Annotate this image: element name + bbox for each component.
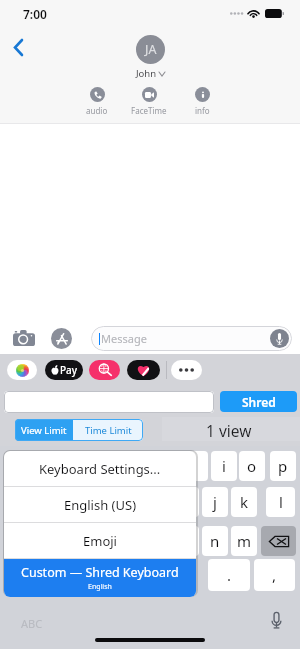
staticText: John (136, 67, 157, 80)
staticText: View Limit (21, 424, 67, 437)
staticText: i (222, 456, 226, 476)
button[interactable]: i (211, 451, 237, 481)
staticText: Time Limit (85, 424, 132, 437)
button[interactable]: Shred (220, 391, 297, 412)
staticText: m (237, 531, 252, 551)
button[interactable]: , (254, 559, 295, 591)
button[interactable]: Custom — Shred Keyboard (4, 559, 196, 597)
button[interactable]: Photos (7, 360, 37, 380)
button[interactable]: p (270, 451, 296, 481)
button[interactable]: n (202, 526, 228, 556)
staticText: n (210, 531, 220, 551)
button[interactable]: Camera (12, 327, 36, 349)
button[interactable]: audio (77, 87, 117, 116)
staticText: FaceTime (131, 105, 167, 116)
button[interactable]: m (231, 526, 257, 556)
button[interactable] (182, 451, 208, 481)
staticText: Keyboard Settings... (39, 460, 161, 478)
button[interactable]: Back (4, 33, 32, 61)
button[interactable]: Image search (89, 360, 120, 380)
button[interactable]: Dictate (270, 329, 289, 348)
button[interactable]: Time Limit (73, 419, 143, 441)
button[interactable]: info (182, 87, 222, 116)
button[interactable]: Emoji (4, 523, 196, 558)
staticText: o (247, 456, 257, 476)
button[interactable] (173, 487, 199, 517)
staticText: Emoji (83, 532, 117, 550)
button[interactable]: Digital Touch (127, 360, 160, 380)
button[interactable]: Dictate (264, 608, 288, 632)
button[interactable]: JA (136, 35, 165, 64)
button[interactable]: App Store (51, 328, 72, 349)
staticText: 7:00 (23, 6, 47, 22)
staticText: . (227, 565, 232, 585)
staticText: k (240, 492, 249, 512)
staticText: , (272, 565, 277, 585)
button[interactable]: English (US) (4, 487, 196, 522)
button[interactable]: More (171, 360, 202, 380)
button[interactable]: Keyboard Settings... (4, 451, 196, 486)
staticText: l (279, 492, 283, 512)
button[interactable]: l (266, 487, 295, 517)
staticText: p (278, 456, 288, 476)
staticText: English (88, 582, 112, 592)
staticText: English (US) (64, 496, 137, 514)
staticText: Custom — Shred Keyboard (21, 564, 179, 581)
staticText: Message (101, 331, 147, 346)
staticText: 1 view (206, 420, 252, 441)
button[interactable]: . (208, 559, 250, 591)
button[interactable]: j (202, 487, 228, 517)
button[interactable]: FaceTime (129, 87, 169, 116)
button[interactable]: Apple Pay (45, 360, 83, 380)
staticText: Pay (60, 363, 78, 377)
button[interactable]: Backspace (261, 526, 296, 556)
button[interactable]: Message (91, 326, 292, 351)
button[interactable]: View Limit (15, 419, 73, 441)
button[interactable]: o (239, 451, 265, 481)
staticText: ABC (21, 616, 43, 631)
staticText: JA (145, 41, 157, 58)
button[interactable] (173, 526, 199, 556)
staticText: j (213, 492, 217, 512)
staticText: audio (86, 105, 108, 116)
button[interactable] (4, 391, 214, 413)
button[interactable]: k (231, 487, 257, 517)
staticText: Shred (242, 394, 276, 410)
staticText: info (195, 105, 210, 116)
